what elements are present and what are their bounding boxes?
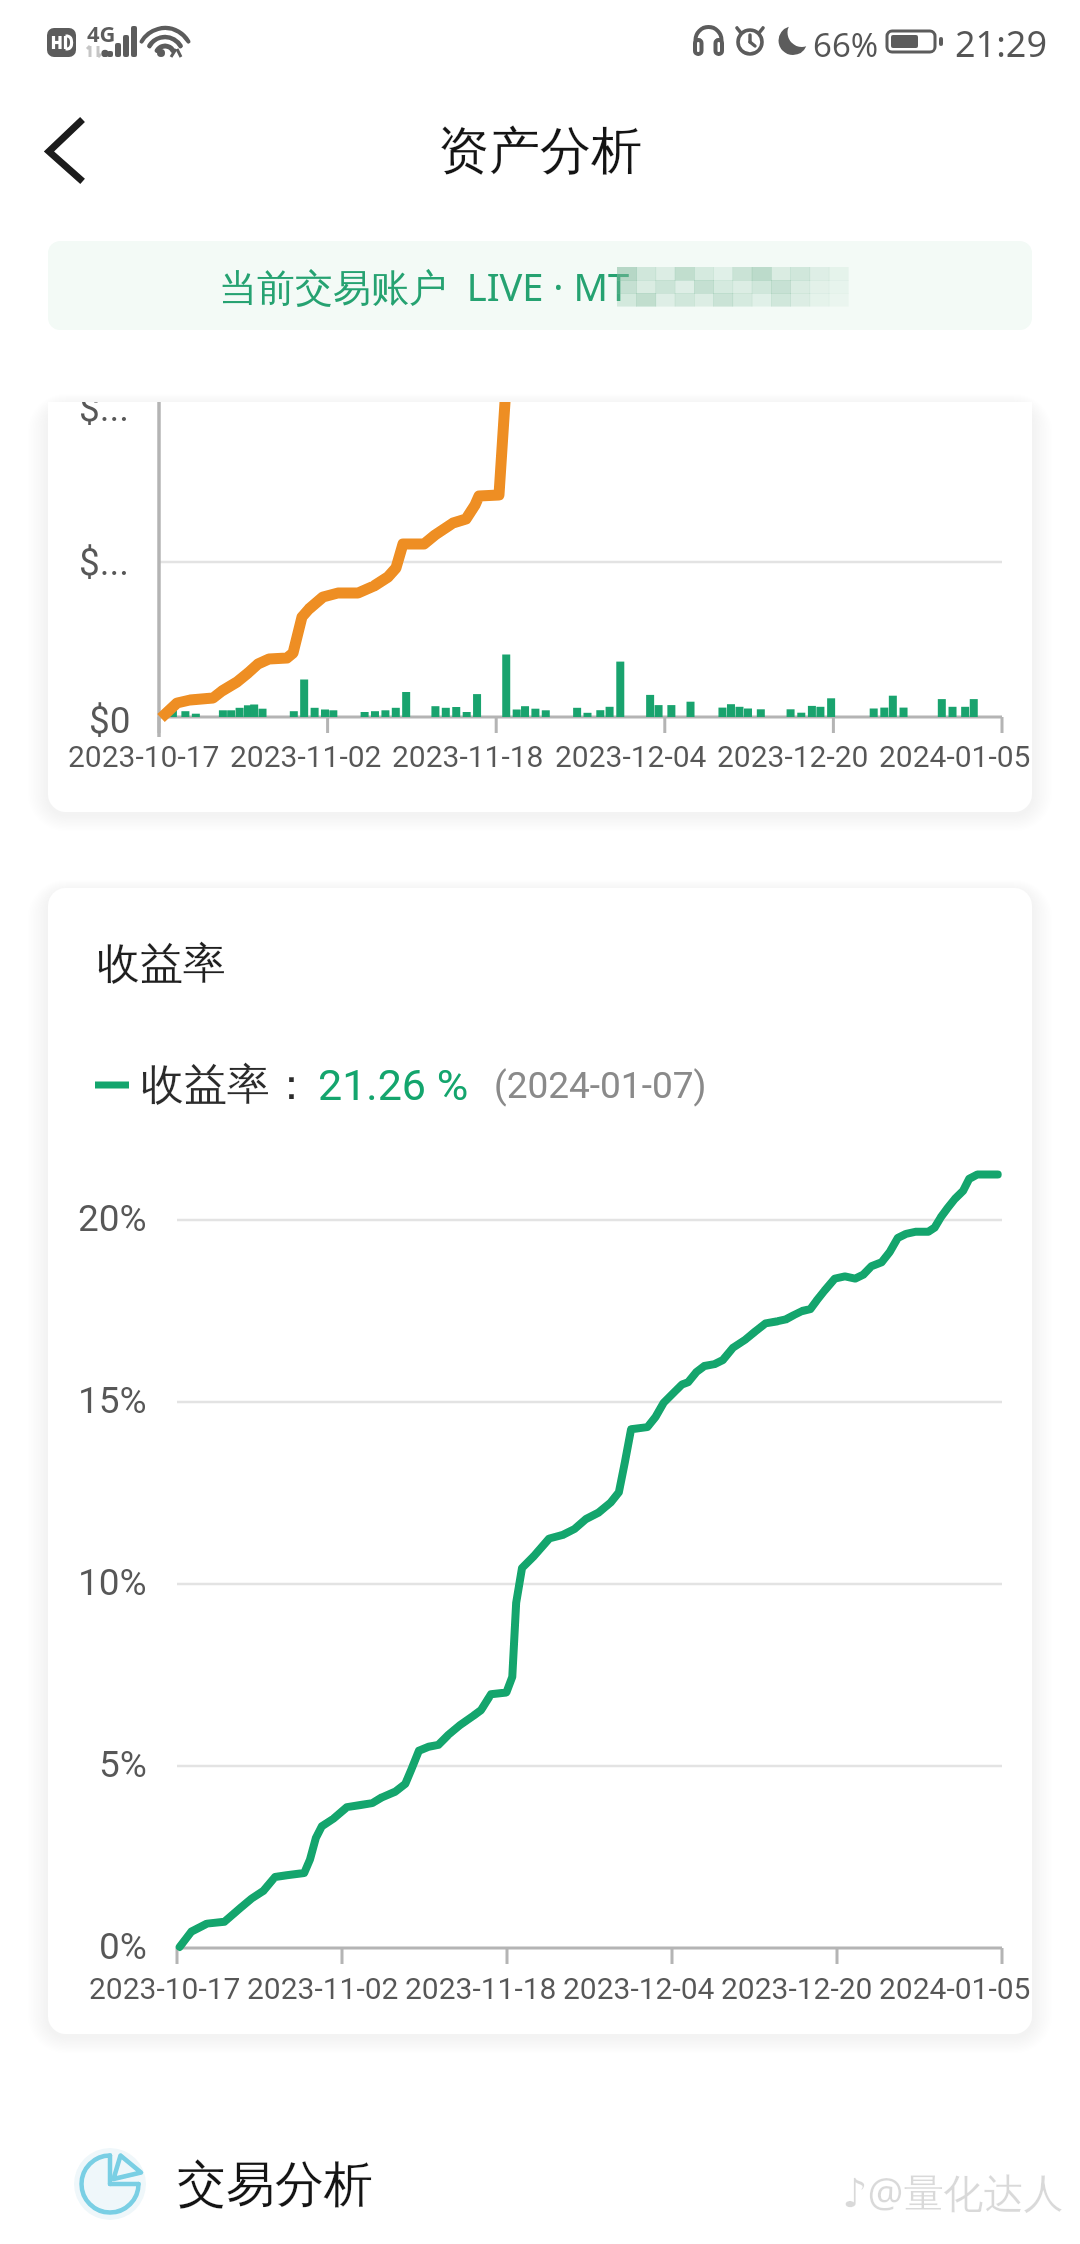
staticText: 15% <box>78 1379 147 1422</box>
staticText: 10% <box>78 1561 147 1604</box>
staticText: $... <box>79 402 130 430</box>
staticText: 2023-10-17 <box>68 739 220 774</box>
staticText: 2023-11-02 <box>230 739 382 774</box>
staticText: 4G <box>87 18 116 48</box>
staticText: 2023-12-20 <box>721 1971 873 2006</box>
staticText: 21:29 <box>955 19 1048 68</box>
staticText: 2024-01-05 <box>879 739 1031 774</box>
staticText: 20% <box>78 1197 147 1240</box>
staticText: 收益率： <box>141 1058 313 1112</box>
staticText: 当前交易账户 LIVE · MT <box>219 260 630 312</box>
staticText: 收益率 <box>97 937 226 991</box>
staticText: 2023-12-04 <box>555 739 707 774</box>
button[interactable]: 当前交易账户 LIVE · MT <box>48 241 1032 330</box>
button[interactable]: 交易分析 <box>0 2086 1080 2244</box>
staticText: 2023-11-02 <box>247 1971 399 2006</box>
staticText: 2023-12-20 <box>717 739 869 774</box>
staticText: $... <box>79 541 130 584</box>
button[interactable]: Back <box>18 88 114 210</box>
staticText: 2023-11-18 <box>405 1971 557 2006</box>
staticText: (2024-01-07) <box>494 1064 707 1107</box>
staticText: 66% <box>813 22 879 67</box>
staticText: 资产分析 <box>438 119 642 183</box>
staticText: 5% <box>99 1743 147 1786</box>
staticText: 交易分析 <box>177 2154 373 2216</box>
staticText: $0 <box>89 699 131 742</box>
staticText: 2024-01-05 <box>879 1971 1031 2006</box>
staticText: 2023-12-04 <box>563 1971 715 2006</box>
staticText: 0% <box>99 1925 147 1968</box>
staticText: 21.26 % <box>318 1060 469 1110</box>
staticText: 2023-10-17 <box>89 1971 241 2006</box>
staticText: 2023-11-18 <box>392 739 544 774</box>
staticText: ♪@量化达人 <box>842 2164 1064 2219</box>
